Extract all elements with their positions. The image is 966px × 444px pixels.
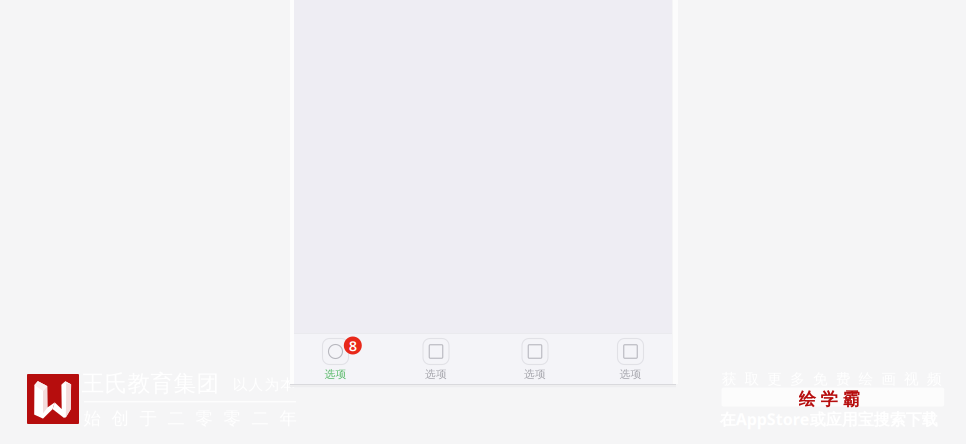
staticText: 王氏教育集团: [81, 370, 219, 397]
staticText: 8: [349, 336, 357, 355]
staticText: 选项: [324, 368, 346, 381]
button[interactable]: 选项: [583, 333, 678, 384]
staticText: 在AppStore或应用宝搜索下载: [720, 408, 938, 430]
staticText: 选项: [425, 368, 447, 381]
staticText: 选项: [619, 368, 641, 381]
button[interactable]: 选项: [389, 333, 483, 384]
staticText: 以人为本: [233, 375, 295, 393]
staticText: 绘 学 霸: [798, 389, 859, 410]
staticText: 选项: [524, 368, 546, 381]
button[interactable]: 选项: [288, 333, 383, 384]
button[interactable]: 选项: [488, 333, 582, 384]
